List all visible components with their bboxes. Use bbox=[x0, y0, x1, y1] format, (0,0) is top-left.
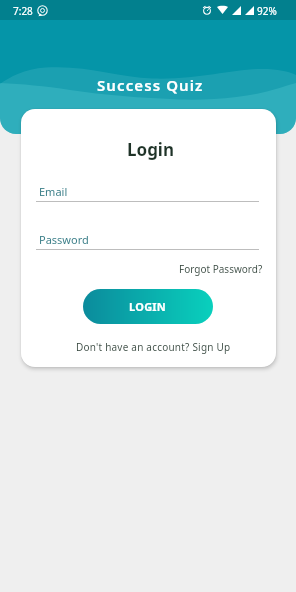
staticText: Email bbox=[39, 184, 68, 199]
staticText: 92% bbox=[257, 4, 277, 18]
button[interactable]: Forgot Password? bbox=[176, 259, 266, 279]
staticText: Forgot Password? bbox=[179, 262, 263, 276]
staticText: Password bbox=[39, 232, 89, 247]
staticText: LOGIN bbox=[129, 299, 167, 314]
button[interactable]: Don't have an account? Sign Up bbox=[73, 337, 234, 357]
button[interactable]: LOGIN bbox=[83, 289, 213, 324]
staticText: Don't have an account? Sign Up bbox=[76, 340, 231, 354]
staticText: Success Quiz bbox=[97, 75, 204, 95]
staticText: 7:28 bbox=[13, 4, 33, 18]
staticText: Login bbox=[127, 138, 175, 161]
